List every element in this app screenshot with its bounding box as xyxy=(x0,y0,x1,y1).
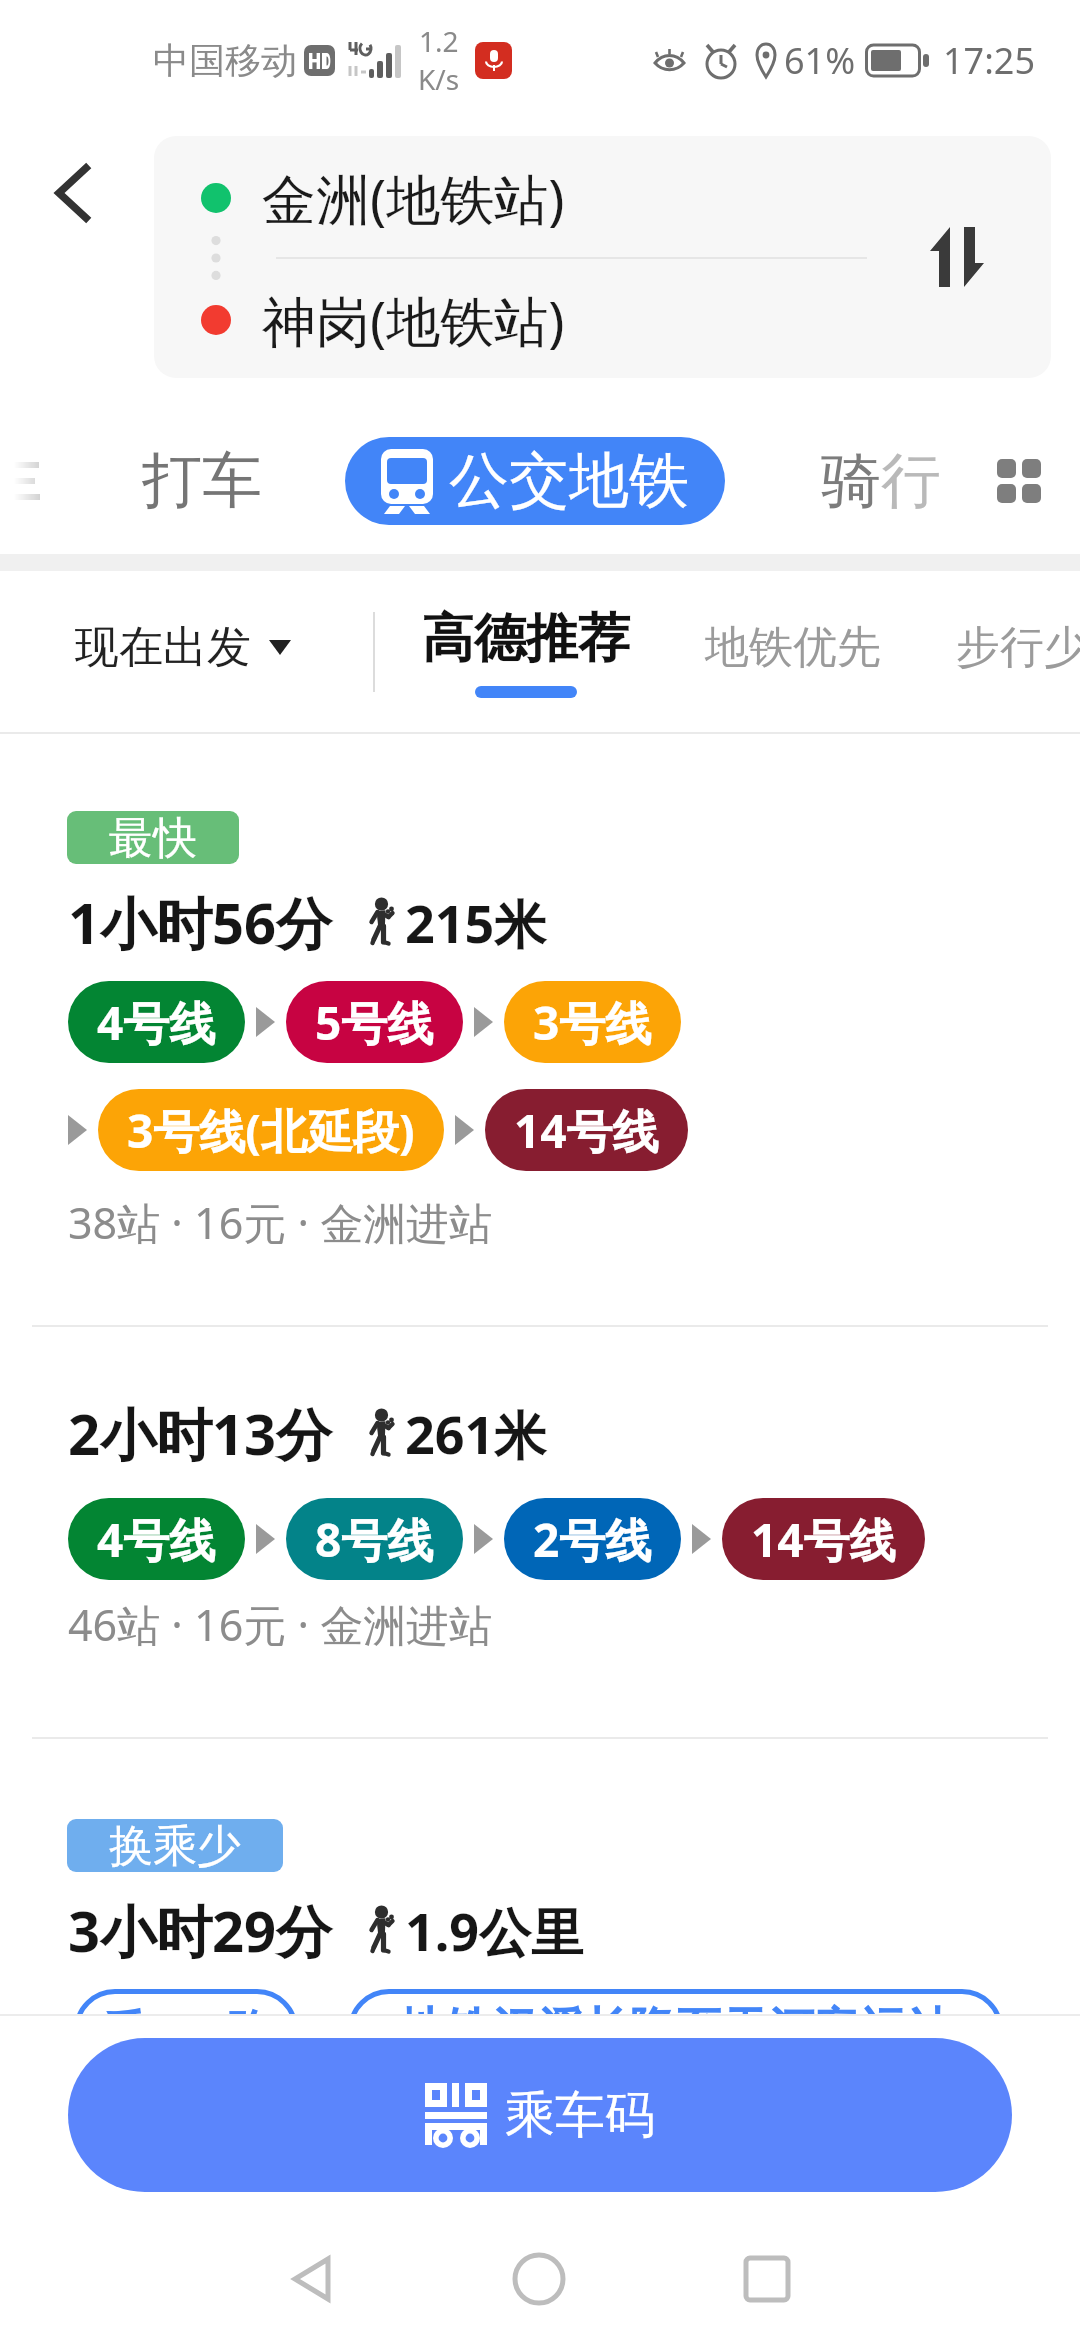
button[interactable]: 公交地铁 xyxy=(345,437,725,525)
staticText: 215米 xyxy=(405,887,547,958)
staticText: 38站 · 16元 · 金洲进站 xyxy=(68,1193,493,1252)
button[interactable]: More travel modes xyxy=(981,443,1057,519)
staticText: 中国移动 xyxy=(153,38,297,83)
staticText: 61% xyxy=(784,36,856,85)
staticText: 1.2 xyxy=(419,22,459,60)
staticText: 最快 xyxy=(109,811,197,864)
staticText: 现在出发 xyxy=(75,620,251,675)
staticText: 17:25 xyxy=(943,36,1036,85)
staticText: 14号线 xyxy=(514,1099,659,1162)
staticText: 1.9公里 xyxy=(405,1895,584,1966)
staticText: 4号线 xyxy=(97,1508,216,1571)
staticText: 3号线 xyxy=(533,991,652,1054)
staticText: 乘车码 xyxy=(505,2084,655,2147)
staticText: 4号线 xyxy=(97,991,216,1054)
staticText: 步行少 xyxy=(956,620,1058,675)
staticText: 高德推荐 xyxy=(422,606,630,672)
staticText: 14号线 xyxy=(751,1508,896,1571)
staticText: 金洲(地铁站) xyxy=(262,161,565,235)
button[interactable]: 高德推荐 xyxy=(400,606,652,698)
button[interactable]: 换乘少 xyxy=(0,1739,1080,2015)
button[interactable]: 2小时13分 xyxy=(0,1327,1080,1737)
staticText: 5号线 xyxy=(315,991,434,1054)
staticText: 打车 xyxy=(142,443,262,519)
button[interactable]: Back xyxy=(267,2233,359,2325)
button[interactable]: 现在出发 xyxy=(75,620,291,675)
button[interactable]: 乘车码 xyxy=(68,2038,1012,2192)
staticText: 地铁优先 xyxy=(705,620,881,675)
button[interactable]: 步行少 xyxy=(934,610,1080,685)
button[interactable]: Back xyxy=(0,130,144,256)
button[interactable]: Recent apps xyxy=(721,2233,813,2325)
staticText: 1小时56分 xyxy=(68,884,333,960)
button[interactable]: Home xyxy=(493,2233,585,2325)
staticText: 神岗(地铁站) xyxy=(262,283,565,357)
button[interactable]: Swap origin and destination xyxy=(897,197,1017,317)
staticText: 地铁汉溪长隆至天河客运站 xyxy=(400,2001,952,2015)
staticText: K/s xyxy=(418,60,460,98)
staticText: 换乘少 xyxy=(109,1819,241,1872)
staticText: 行 xyxy=(881,443,941,519)
staticText: 骑 xyxy=(821,443,881,519)
staticText: 3小时29分 xyxy=(68,1892,333,1968)
staticText: 公交地铁 xyxy=(449,443,689,519)
staticText: 2号线 xyxy=(533,1508,652,1571)
button[interactable]: 金洲(地铁站) xyxy=(154,136,1051,378)
button[interactable]: 地铁优先 xyxy=(683,610,903,685)
button[interactable]: 最快 xyxy=(0,734,1080,1325)
staticText: 番147路 xyxy=(101,1999,272,2015)
button[interactable]: 骑 xyxy=(799,423,963,539)
staticText: 46站 · 16元 · 金洲进站 xyxy=(68,1595,493,1654)
staticText: 3号线(北延段) xyxy=(127,1099,415,1162)
button[interactable]: 打车 xyxy=(120,423,284,539)
staticText: 2小时13分 xyxy=(68,1395,333,1471)
staticText: 8号线 xyxy=(315,1508,434,1571)
staticText: 261米 xyxy=(405,1398,547,1469)
